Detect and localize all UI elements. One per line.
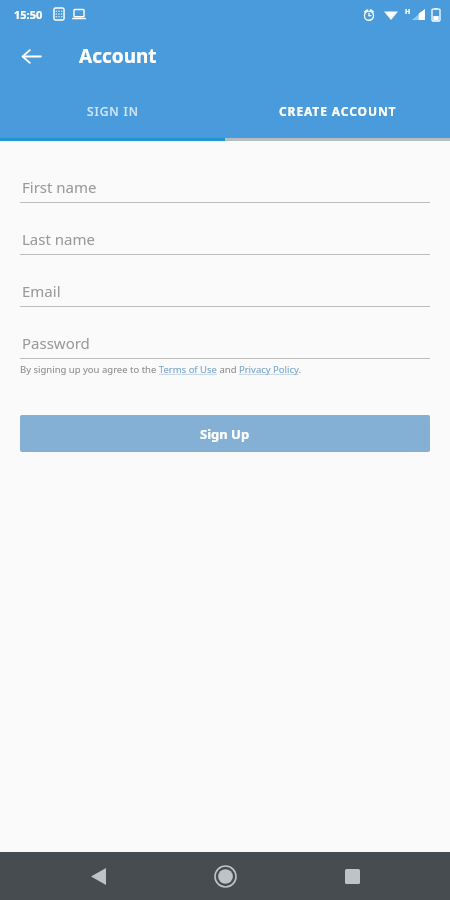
button[interactable]: First name: [20, 165, 430, 203]
button[interactable]: Recent apps: [332, 856, 372, 896]
button[interactable]: SIGN IN: [0, 84, 225, 138]
button[interactable]: Back: [9, 34, 53, 78]
button[interactable]: Home: [203, 854, 247, 898]
staticText: By signing up you agree to the Terms of …: [20, 363, 302, 376]
staticText: SIGN IN: [87, 103, 139, 119]
button[interactable]: Email: [20, 269, 430, 307]
button[interactable]: Password: [20, 321, 430, 359]
button[interactable]: CREATE ACCOUNT: [225, 84, 450, 138]
button[interactable]: Back: [78, 856, 118, 896]
staticText: Last name: [22, 229, 95, 249]
staticText: Account: [79, 43, 157, 69]
staticText: H: [405, 7, 411, 17]
staticText: Email: [22, 281, 61, 301]
button[interactable]: By signing up you agree to the Terms of …: [20, 363, 430, 376]
staticText: CREATE ACCOUNT: [279, 103, 397, 119]
staticText: Password: [22, 333, 90, 353]
button[interactable]: Sign Up: [20, 415, 430, 452]
staticText: 15:50: [14, 7, 43, 22]
staticText: Sign Up: [200, 425, 250, 443]
staticText: First name: [22, 177, 97, 197]
button[interactable]: Last name: [20, 217, 430, 255]
